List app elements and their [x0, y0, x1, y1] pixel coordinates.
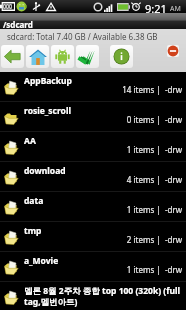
staticText: 1 items | -drw — [0, 144, 182, 155]
staticText: 14 items | -drw — [0, 84, 182, 95]
staticText: sdcard: Total 7.40 GB / Available 6.38 G… — [7, 31, 158, 42]
staticText: AM — [170, 4, 181, 14]
button[interactable]: 멜론 8월 2주차 종합 top 100 (320k) (full tag,멜번… — [0, 282, 186, 310]
button[interactable]: Plugin — [76, 45, 99, 68]
staticText: data — [24, 195, 44, 207]
staticText: 4 items | -drw — [0, 174, 182, 185]
staticText: 0 items | -drw — [0, 114, 182, 125]
button[interactable]: AA — [0, 132, 186, 162]
staticText: 9:21 — [145, 1, 167, 14]
staticText: rosie_scroll — [24, 105, 71, 117]
staticText: a_Movie — [24, 255, 59, 267]
button[interactable]: Info — [110, 45, 133, 68]
button[interactable]: rosie_scroll — [0, 102, 186, 132]
staticText: 1 items | -drw — [0, 264, 182, 275]
button[interactable]: AppBackup — [0, 72, 186, 102]
button[interactable]: a_Movie — [0, 252, 186, 282]
staticText: 1 items | -drw — [0, 204, 182, 215]
staticText: /sdcard — [3, 19, 33, 30]
button[interactable]: Close — [167, 45, 179, 57]
staticText: download — [24, 165, 66, 177]
staticText: 2 items | -drw — [0, 234, 182, 245]
button[interactable]: tmp — [0, 222, 186, 252]
staticText: tmp — [24, 225, 42, 237]
staticText: 멜론 8월 2주차 종합 top 100 (320k) (full tag,멜번… — [24, 285, 181, 307]
button[interactable]: Back — [1, 45, 24, 68]
staticText: AppBackup — [24, 75, 72, 87]
button[interactable]: Home — [26, 45, 49, 68]
staticText: AA — [24, 135, 36, 147]
button[interactable]: download — [0, 162, 186, 192]
button[interactable]: Apps — [51, 45, 74, 68]
button[interactable]: data — [0, 192, 186, 222]
